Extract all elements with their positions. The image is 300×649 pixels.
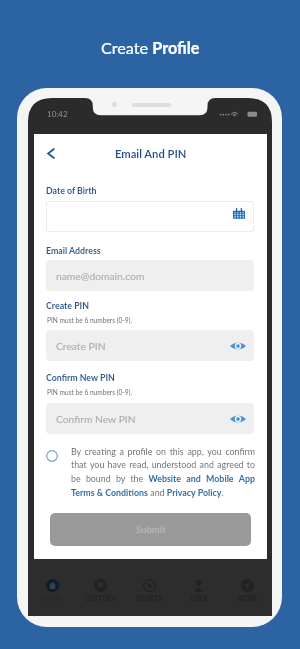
staticText: PIN must be 6 numbers (0-9).	[47, 388, 132, 396]
button[interactable]: Confirm New PIN	[46, 403, 254, 434]
staticText: SPORTS	[136, 594, 163, 602]
staticText: Date of Birth	[46, 185, 97, 196]
staticText: LOTTERY	[85, 594, 116, 602]
staticText: Email Address	[46, 245, 101, 256]
staticText: Create Profile	[101, 38, 200, 57]
button[interactable]: Create PIN	[46, 330, 254, 361]
staticText: USER	[190, 594, 208, 602]
button[interactable]	[46, 201, 254, 232]
staticText: name@domain.com	[56, 270, 145, 282]
button[interactable]: Back	[42, 144, 60, 162]
staticText: HOME	[41, 594, 63, 602]
staticText: By creating a profile on this app, you c…	[71, 446, 255, 498]
staticText: Create PIN	[56, 340, 106, 352]
staticText: MORE	[237, 594, 258, 602]
button[interactable]: Accept terms and conditions	[46, 450, 58, 462]
staticText: Confirm New PIN	[56, 413, 136, 425]
button[interactable]: HOME	[28, 559, 76, 616]
staticText: Submit	[136, 524, 166, 535]
staticText: Create PIN	[46, 300, 89, 311]
button[interactable]: name@domain.com	[46, 260, 254, 291]
button[interactable]: Submit	[50, 513, 251, 546]
staticText: Email And PIN	[115, 147, 187, 160]
staticText: PIN must be 6 numbers (0-9).	[47, 316, 132, 324]
staticText: Confirm New PIN	[46, 372, 115, 383]
staticText: 10:42	[47, 109, 68, 119]
